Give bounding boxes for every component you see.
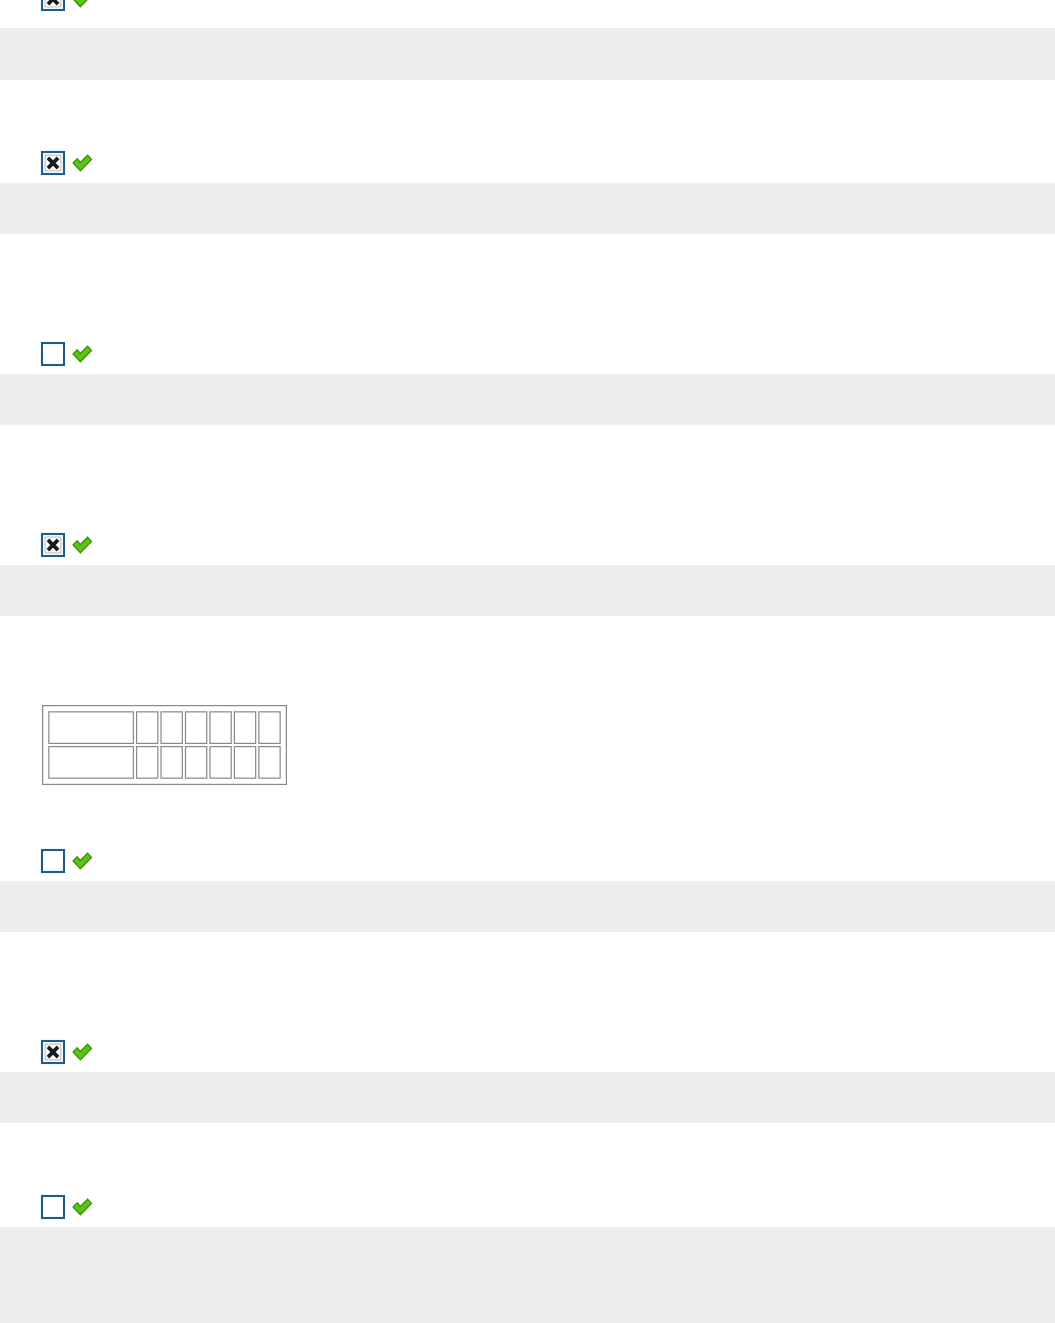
button[interactable]: Missing image	[42, 1041, 64, 1063]
button[interactable]: Missing image	[42, 1041, 1055, 1063]
button[interactable]: Passed	[72, 1197, 92, 1217]
button[interactable]: Missing image	[42, 0, 64, 10]
button[interactable]: Image placeholder	[42, 850, 1055, 872]
button[interactable]: Missing image	[42, 534, 64, 556]
button[interactable]: Missing image	[42, 152, 1055, 174]
button[interactable]: Passed	[72, 851, 92, 871]
button[interactable]: Missing image	[42, 152, 64, 174]
button[interactable]: Image placeholder	[42, 1196, 64, 1218]
button[interactable]: Image placeholder	[42, 343, 1055, 365]
button[interactable]	[42, 705, 287, 785]
button[interactable]: Passed	[72, 535, 92, 555]
button[interactable]: Image placeholder	[42, 1196, 1055, 1218]
button[interactable]: Missing image	[42, 0, 1055, 10]
button[interactable]: Image placeholder	[42, 343, 64, 365]
button[interactable]: Passed	[72, 153, 92, 173]
button[interactable]: Missing image	[42, 534, 1055, 556]
button[interactable]: Image placeholder	[42, 850, 64, 872]
button[interactable]: Passed	[72, 344, 92, 364]
button[interactable]: Passed	[72, 1042, 92, 1062]
button[interactable]: Passed	[72, 0, 92, 9]
